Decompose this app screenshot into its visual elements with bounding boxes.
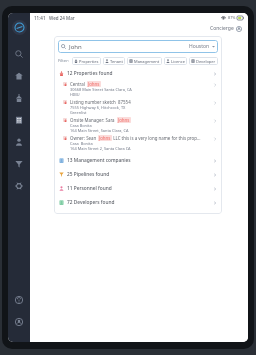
- staticText: Greenlist: [70, 110, 87, 115]
- staticText: 30668 Main Street Santa Clara, CA: [70, 87, 132, 92]
- staticText: Filter:: [58, 58, 70, 64]
- staticText: Johns: [118, 117, 130, 123]
- button[interactable]: Onsite Manager: Sara: [58, 116, 218, 134]
- staticText: 7555 Highway 6, Hitchcock, TX: [70, 105, 126, 110]
- staticText: 72 Developers found: [67, 199, 115, 206]
- button[interactable]: Help: [9, 290, 29, 310]
- staticText: Properties: [79, 59, 99, 64]
- staticText: 11 Personnel found: [67, 185, 112, 192]
- button[interactable]: App logo: [12, 20, 27, 35]
- button[interactable]: 25 Pipelines found: [58, 170, 218, 179]
- button[interactable]: Listing number sketch 87554: [58, 98, 218, 116]
- button[interactable]: Home: [9, 66, 29, 86]
- staticText: Johns: [99, 135, 111, 141]
- staticText: Onsite Manager: Sara: [70, 117, 117, 123]
- button[interactable]: 12 Properties found: [58, 69, 218, 78]
- button[interactable]: Tenant: [103, 57, 125, 65]
- staticText: Listing number sketch 87554: [70, 99, 131, 105]
- button[interactable]: Central: [58, 80, 218, 98]
- staticText: Concierge: [210, 25, 234, 32]
- staticText: 87%: [228, 15, 236, 20]
- staticText: Developers: [196, 59, 216, 64]
- button[interactable]: Licence: [164, 57, 187, 65]
- button[interactable]: People: [9, 132, 29, 152]
- staticText: Johns: [88, 81, 100, 87]
- button[interactable]: 13 Management companies: [58, 156, 218, 165]
- staticText: HIBU: [70, 92, 80, 97]
- staticText: Owner: Sean: [70, 135, 98, 141]
- staticText: Tenant: [110, 59, 123, 64]
- staticText: Casa Bonita: [70, 141, 93, 146]
- button[interactable]: Developers: [189, 57, 218, 65]
- staticText: Central: [70, 81, 87, 87]
- staticText: 12 Properties found: [67, 70, 113, 77]
- button[interactable]: Management: [127, 57, 162, 65]
- staticText: Management: [134, 59, 160, 64]
- button[interactable]: Search: [9, 44, 29, 64]
- button[interactable]: Account: [9, 312, 29, 332]
- button[interactable]: John: [58, 40, 218, 53]
- button[interactable]: Properties: [72, 57, 101, 65]
- button[interactable]: Filters: [9, 154, 29, 174]
- staticText: Houston: [189, 43, 210, 50]
- staticText: Licence: [171, 59, 185, 64]
- staticText: Casa Bonita: [70, 123, 92, 128]
- staticText: 164 Main Street, Santa Clara, CA: [70, 128, 129, 133]
- button[interactable]: Concierge: [209, 24, 243, 33]
- button[interactable]: Buildings: [9, 110, 29, 130]
- staticText: 11:41: [34, 15, 46, 21]
- staticText: LLC this is a very long name for this pr…: [112, 135, 201, 141]
- staticText: Wed 24 Mar: [49, 15, 75, 21]
- staticText: 164 Main Street 2, Santa Clara CA: [70, 146, 131, 151]
- staticText: 13 Management companies: [67, 157, 131, 164]
- button[interactable]: 72 Developers found: [58, 198, 218, 207]
- staticText: 25 Pipelines found: [67, 171, 110, 178]
- button[interactable]: Settings: [9, 176, 29, 196]
- button[interactable]: Properties: [9, 88, 29, 108]
- button[interactable]: Houston: [189, 43, 215, 50]
- staticText: John: [69, 43, 82, 51]
- button[interactable]: Owner: Sean: [58, 134, 218, 152]
- button[interactable]: 11 Personnel found: [58, 184, 218, 193]
